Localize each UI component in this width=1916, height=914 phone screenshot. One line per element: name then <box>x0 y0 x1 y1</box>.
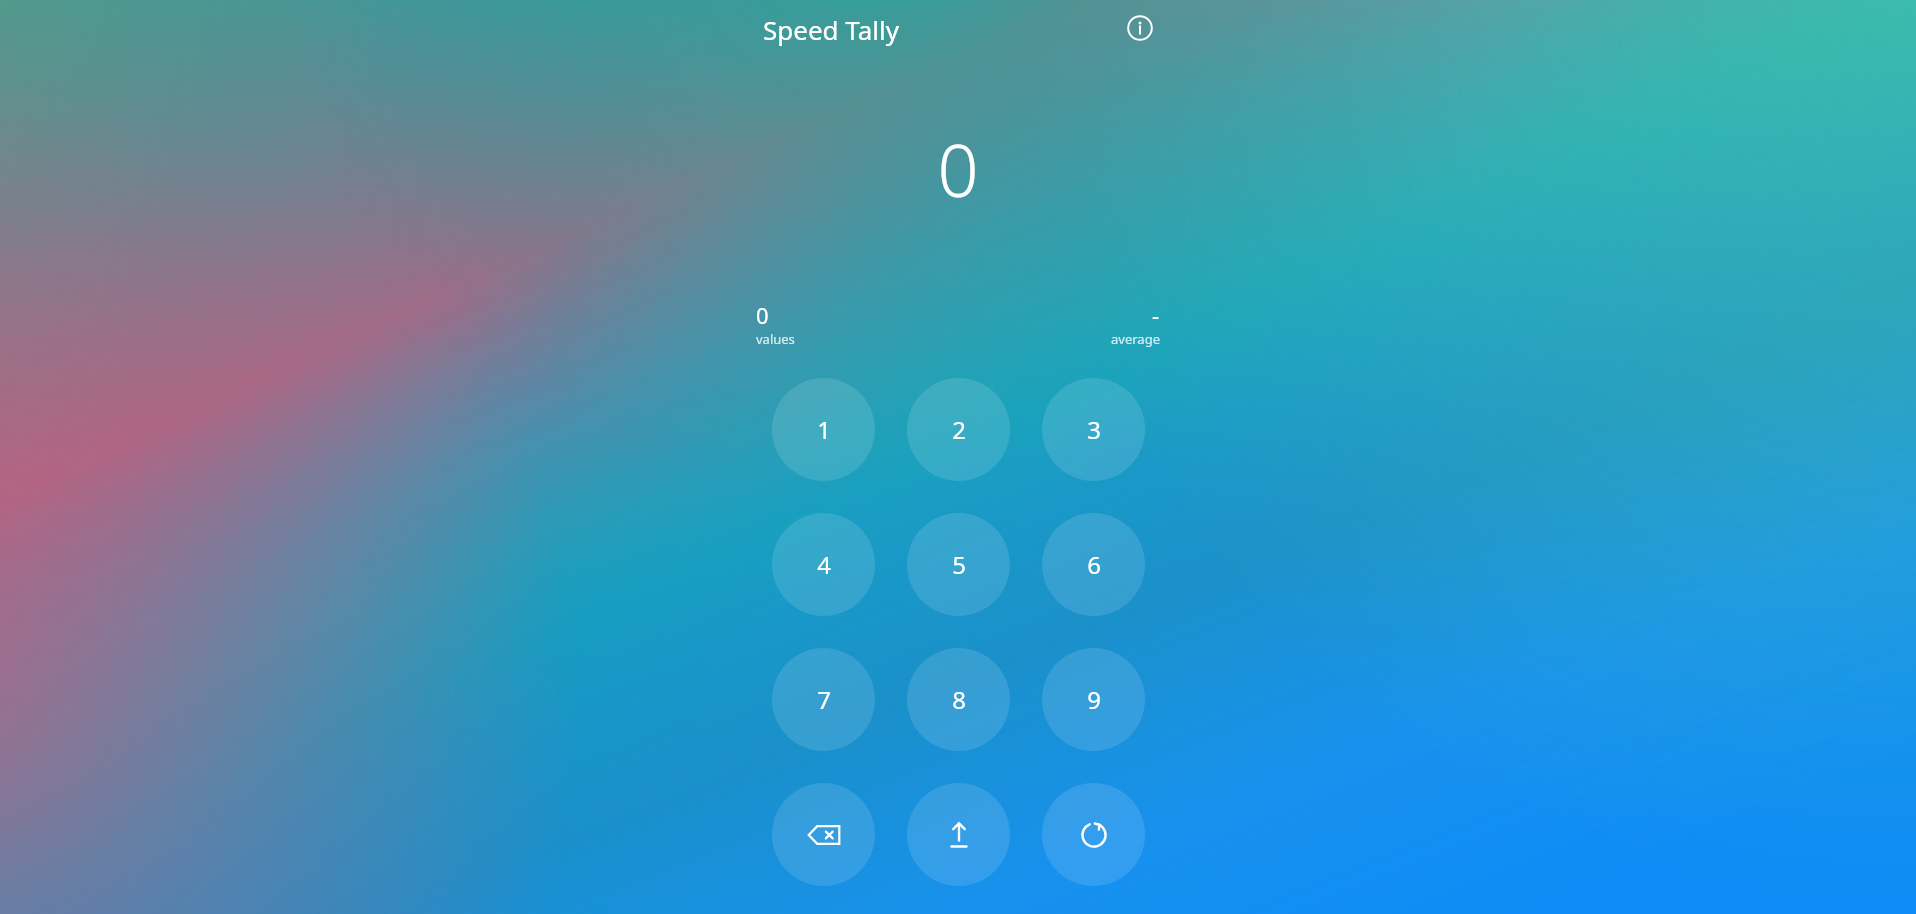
button[interactable]: 1 <box>772 378 875 481</box>
button[interactable]: Reset <box>1042 783 1145 886</box>
button[interactable]: Submit <box>907 783 1010 886</box>
button[interactable]: 3 <box>1042 378 1145 481</box>
staticText: average <box>1111 330 1160 348</box>
button[interactable]: About <box>1118 6 1162 50</box>
button[interactable]: 8 <box>907 648 1010 751</box>
button[interactable]: 4 <box>772 513 875 616</box>
staticText: Speed Tally <box>763 12 899 47</box>
staticText: 7 <box>817 683 831 716</box>
staticText: - <box>1152 300 1160 330</box>
staticText: 6 <box>1087 548 1101 581</box>
staticText: 3 <box>1087 413 1101 446</box>
staticText: values <box>756 330 795 348</box>
staticText: 1 <box>817 413 831 446</box>
button[interactable]: 9 <box>1042 648 1145 751</box>
staticText: 0 <box>937 120 979 218</box>
button[interactable]: 6 <box>1042 513 1145 616</box>
staticText: 8 <box>952 683 966 716</box>
staticText: 9 <box>1087 683 1101 716</box>
button[interactable]: 7 <box>772 648 875 751</box>
button[interactable]: Backspace <box>772 783 875 886</box>
staticText: 5 <box>952 548 966 581</box>
button[interactable]: 2 <box>907 378 1010 481</box>
button[interactable]: 5 <box>907 513 1010 616</box>
staticText: 4 <box>817 548 831 581</box>
staticText: 2 <box>952 413 966 446</box>
staticText: 0 <box>756 300 769 330</box>
